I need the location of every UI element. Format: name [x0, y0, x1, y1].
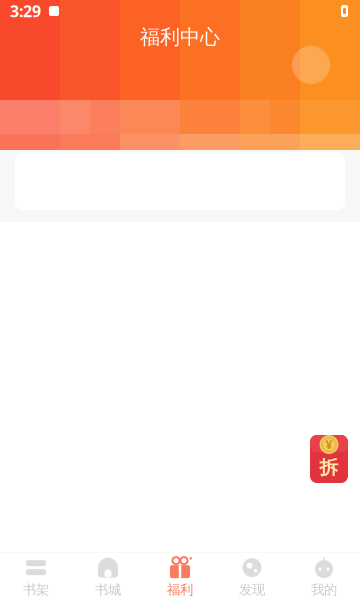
- staticText: 3:29: [10, 0, 41, 22]
- staticText: 拆: [319, 456, 338, 479]
- button[interactable]: 我的: [288, 552, 360, 600]
- button[interactable]: 书城: [72, 552, 144, 600]
- button[interactable]: 书架: [0, 552, 72, 600]
- button[interactable]: 福利: [144, 552, 216, 600]
- staticText: 我的: [311, 582, 337, 598]
- staticText: ¥: [325, 437, 332, 452]
- staticText: 福利中心: [140, 25, 220, 49]
- button[interactable]: 发现: [216, 552, 288, 600]
- staticText: 福利: [167, 582, 193, 598]
- staticText: 发现: [239, 582, 265, 598]
- staticText: 书城: [95, 582, 121, 598]
- staticText: 书架: [23, 582, 49, 598]
- button[interactable]: 拆红包: [310, 435, 348, 483]
